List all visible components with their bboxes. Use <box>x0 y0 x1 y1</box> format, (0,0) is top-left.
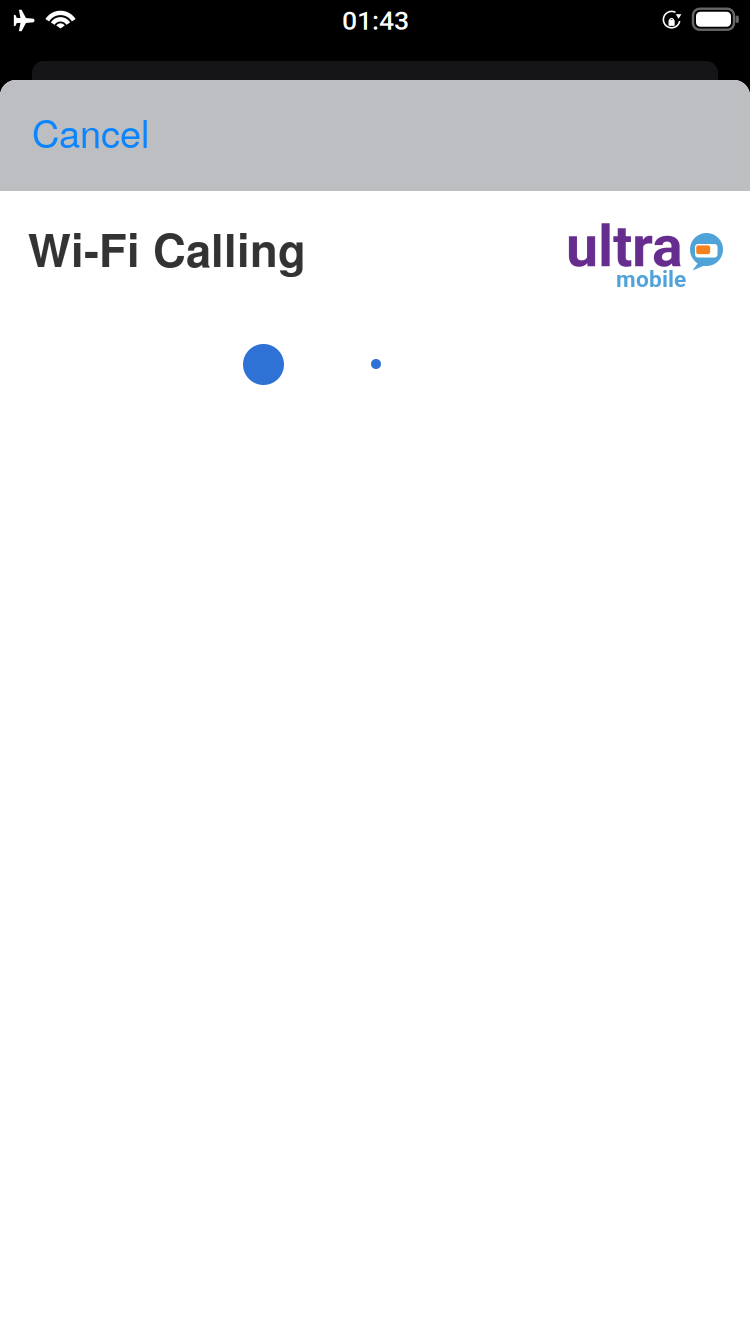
button[interactable]: Cancel <box>0 67 175 204</box>
staticText: mobile <box>616 266 686 293</box>
staticText: Wi-Fi Calling <box>28 216 306 281</box>
staticText: Cancel <box>32 104 149 159</box>
staticText: ultra <box>566 213 683 280</box>
staticText: 01:43 <box>342 5 409 36</box>
